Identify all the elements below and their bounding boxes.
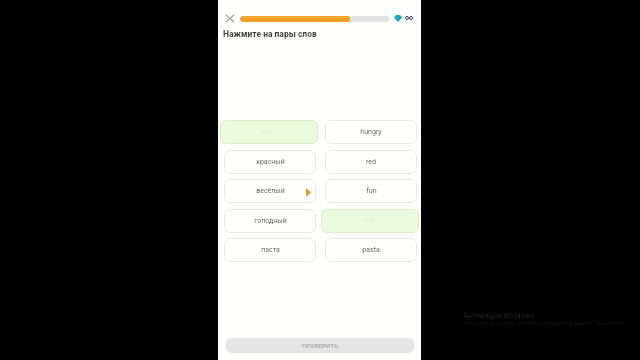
other: Lesson progress — [240, 16, 389, 22]
staticText: паста — [261, 246, 280, 254]
button[interactable]: счёт — [220, 120, 318, 144]
staticText: ПРОВЕРИТЬ — [302, 342, 339, 349]
staticText: Нажмите на пары слов — [223, 29, 317, 39]
button[interactable]: весёлый — [224, 179, 316, 203]
button[interactable]: bill — [321, 209, 419, 233]
staticText: bill — [365, 217, 375, 225]
button[interactable]: паста — [224, 238, 316, 262]
staticText: весёлый — [256, 187, 285, 195]
staticText: красный — [256, 158, 285, 166]
button[interactable]: hungry — [325, 120, 417, 144]
button[interactable]: красный — [224, 150, 316, 174]
staticText: счёт — [262, 128, 277, 136]
button[interactable]: ПРОВЕРИТЬ — [225, 338, 415, 353]
button[interactable]: Close — [222, 11, 237, 26]
button[interactable]: fun — [325, 179, 417, 203]
staticText: голодный — [254, 217, 287, 225]
staticText: red — [366, 158, 376, 166]
button[interactable]: голодный — [224, 209, 316, 233]
button[interactable]: pasta — [325, 238, 417, 262]
staticText: Чтобы активировать Windows, перейдите в … — [463, 320, 628, 326]
button[interactable]: Unlimited hearts — [403, 12, 415, 24]
staticText: hungry — [360, 128, 382, 136]
staticText: pasta — [362, 246, 380, 254]
staticText: Активация Windows — [463, 311, 535, 320]
button[interactable]: Gems — [392, 12, 404, 24]
button[interactable]: red — [325, 150, 417, 174]
staticText: fun — [366, 187, 377, 195]
